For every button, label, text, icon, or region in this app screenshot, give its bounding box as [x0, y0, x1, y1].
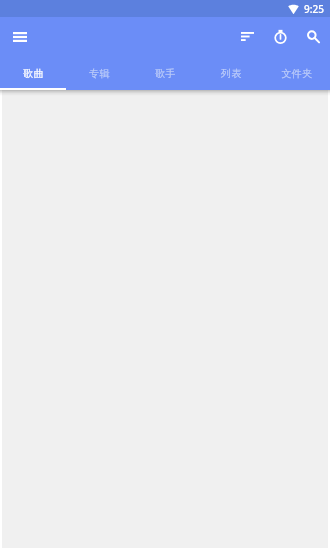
button[interactable]: 列表 [198, 57, 264, 90]
button[interactable]: 专辑 [66, 57, 132, 90]
button[interactable]: 文件夹 [264, 57, 330, 90]
staticText: 专辑 [89, 67, 110, 80]
button[interactable]: 歌手 [132, 57, 198, 90]
button[interactable]: Sort [231, 21, 264, 54]
button[interactable]: Search [297, 21, 330, 54]
button[interactable]: Menu [3, 21, 36, 54]
staticText: 歌曲 [23, 67, 44, 80]
button[interactable]: 歌曲 [0, 57, 66, 90]
staticText: 歌手 [155, 67, 176, 80]
button[interactable]: Sleep timer [264, 21, 297, 54]
staticText: 9:25 [304, 2, 324, 16]
staticText: 文件夹 [281, 67, 313, 80]
staticText: 列表 [221, 67, 242, 80]
